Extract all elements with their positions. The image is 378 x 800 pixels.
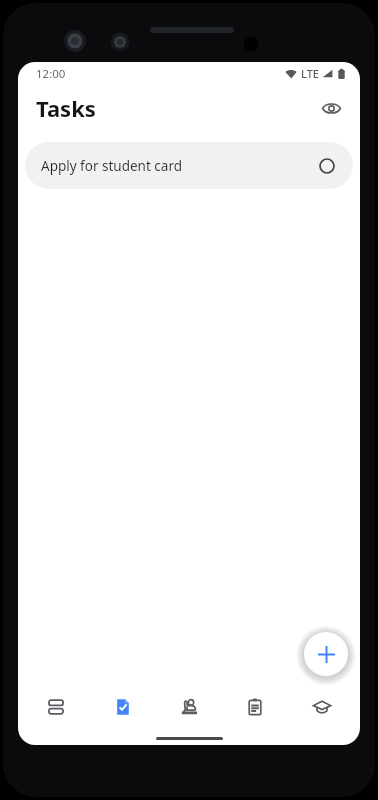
- staticText: LTE: [301, 66, 319, 81]
- button[interactable]: Mark task complete: [316, 155, 338, 177]
- button[interactable]: Apply for student card: [25, 142, 353, 189]
- staticText: 12:00: [36, 66, 66, 82]
- button[interactable]: Tasks: [95, 683, 151, 731]
- button[interactable]: Toggle visibility: [312, 89, 350, 127]
- button[interactable]: Dashboard: [28, 683, 84, 731]
- staticText: Tasks: [36, 93, 96, 123]
- staticText: Apply for student card: [41, 157, 316, 175]
- button[interactable]: Notes: [227, 683, 283, 731]
- button[interactable]: Grades: [294, 683, 350, 731]
- button[interactable]: Add task: [304, 632, 348, 676]
- button[interactable]: Classroom: [161, 683, 217, 731]
